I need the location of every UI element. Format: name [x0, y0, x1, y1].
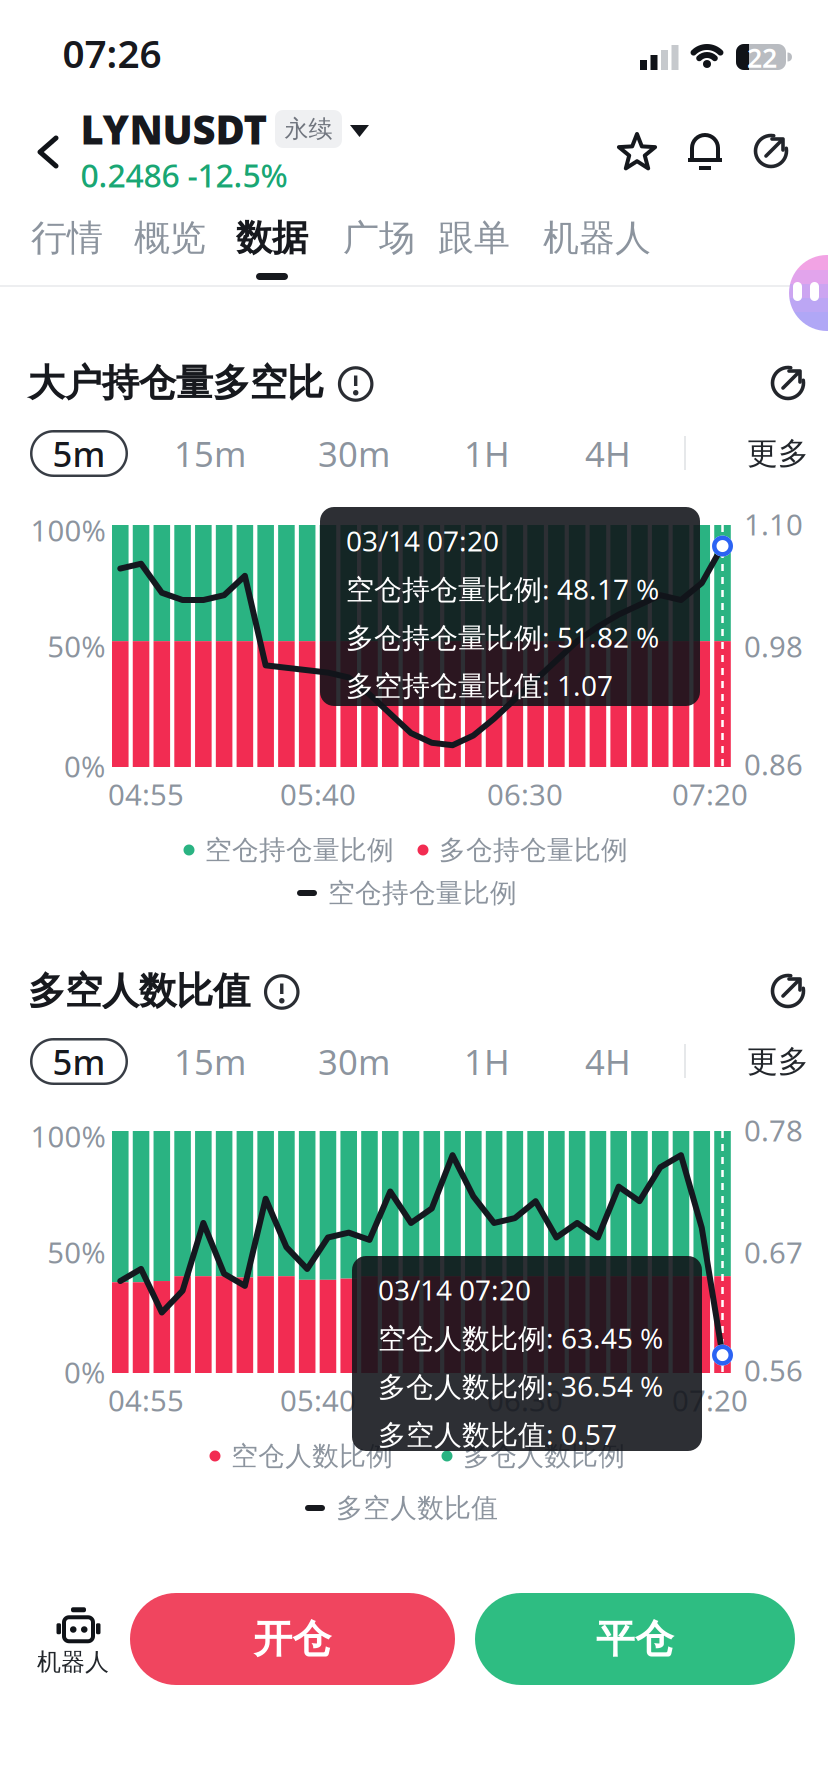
staticText: 多仓持仓量比例 [439, 834, 628, 866]
staticText: 03/14 07:20 [378, 1271, 531, 1308]
staticText: 0.98 [744, 626, 803, 665]
staticText: 空仓人数比例 [231, 1440, 393, 1472]
staticText: 广场 [343, 216, 415, 260]
staticText: 1.10 [744, 504, 803, 543]
button[interactable]: 平仓 [475, 1593, 795, 1685]
staticText: 0.67 [744, 1232, 803, 1271]
button[interactable]: Trading bot [25, 1600, 121, 1680]
staticText: 0.78 [744, 1110, 803, 1149]
button[interactable]: 永续 [275, 110, 342, 148]
button[interactable]: 30m [318, 430, 390, 476]
button[interactable]: 数据 [236, 216, 308, 260]
staticText: 数据 [236, 216, 308, 260]
staticText: 更多 [747, 1043, 809, 1080]
staticText: 100% [30, 510, 105, 549]
button[interactable]: 5m [30, 1038, 128, 1085]
button[interactable]: 30m [318, 1038, 390, 1084]
button[interactable]: Alerts [687, 132, 723, 170]
staticText: 5m [52, 1038, 105, 1084]
button[interactable]: 更多 [747, 435, 809, 472]
staticText: 机器人 [37, 1647, 109, 1677]
staticText: 04:55 [108, 1380, 184, 1419]
staticText: 永续 [284, 114, 332, 144]
staticText: 空仓持仓量比例 [205, 834, 394, 866]
staticText: 07:26 [62, 27, 161, 79]
staticText: 机器人 [543, 216, 651, 260]
staticText: 空仓持仓量比例: 48.17 % [346, 570, 659, 607]
staticText: 03/14 07:20 [346, 522, 499, 559]
staticText: 多仓人数比例 [463, 1440, 625, 1472]
staticText: 多仓人数比例: 36.54 % [378, 1367, 663, 1405]
button[interactable]: Open chart [770, 973, 806, 1009]
button[interactable]: Favorite [617, 132, 657, 172]
staticText: 1H [464, 430, 510, 476]
button[interactable]: 1H [464, 1038, 510, 1084]
staticText: 0% [64, 746, 105, 785]
staticText: 多空持仓量比值: 1.07 [346, 666, 613, 704]
staticText: 50% [47, 1232, 105, 1271]
staticText: 多空人数比值 [336, 1492, 498, 1524]
button[interactable]: Assistant [789, 255, 828, 331]
staticText: 04:55 [108, 774, 184, 813]
staticText: 100% [30, 1116, 105, 1155]
button[interactable]: 5m [30, 430, 128, 477]
button[interactable]: Share [753, 133, 789, 169]
staticText: 15m [174, 430, 246, 476]
staticText: 开仓 [253, 1615, 331, 1663]
staticText: 空仓人数比例: 63.45 % [378, 1319, 663, 1356]
button[interactable]: 广场 [343, 216, 415, 260]
staticText: 0% [64, 1352, 105, 1391]
button[interactable]: 概览 [134, 216, 206, 260]
staticText: 15m [174, 1038, 246, 1084]
staticText: 07:20 [672, 1380, 748, 1419]
button[interactable]: 跟单 [438, 216, 510, 260]
staticText: 22 [747, 40, 777, 75]
staticText: 1H [464, 1038, 510, 1084]
staticText: 多仓持仓量比例: 51.82 % [346, 618, 659, 656]
staticText: 50% [47, 626, 105, 665]
staticText: 空仓持仓量比例 [328, 877, 517, 909]
staticText: 30m [318, 430, 390, 476]
staticText: 平仓 [596, 1615, 674, 1663]
button[interactable]: 15m [174, 1038, 246, 1084]
button[interactable]: 行情 [31, 216, 103, 260]
staticText: 4H [585, 1038, 631, 1084]
staticText: 07:20 [672, 774, 748, 813]
staticText: 0.2486 -12.5% [80, 154, 287, 196]
staticText: 多空人数比值: 0.57 [378, 1415, 617, 1453]
button[interactable]: 机器人 [543, 216, 651, 260]
button[interactable]: Back [36, 136, 64, 168]
staticText: 概览 [134, 216, 206, 260]
staticText: 05:40 [280, 1380, 356, 1419]
staticText: 行情 [31, 216, 103, 260]
staticText: 更多 [747, 435, 809, 472]
staticText: 跟单 [438, 216, 510, 260]
staticText: 多空人数比值 [28, 968, 250, 1014]
staticText: 06:30 [487, 1380, 563, 1419]
button[interactable]: Open chart [770, 365, 806, 401]
button[interactable]: 4H [585, 430, 631, 476]
button[interactable]: 更多 [747, 1043, 809, 1080]
staticText: 06:30 [487, 774, 563, 813]
staticText: 大户持仓量多空比 [28, 360, 324, 406]
staticText: 05:40 [280, 774, 356, 813]
staticText: 4H [585, 430, 631, 476]
staticText: 0.86 [744, 744, 803, 783]
staticText: LYNUSDT [80, 102, 267, 155]
button[interactable]: 4H [585, 1038, 631, 1084]
staticText: 0.56 [744, 1350, 803, 1389]
button[interactable]: 15m [174, 430, 246, 476]
button[interactable]: 1H [464, 430, 510, 476]
staticText: 5m [52, 430, 105, 476]
staticText: 30m [318, 1038, 390, 1084]
button[interactable]: 开仓 [130, 1593, 455, 1685]
